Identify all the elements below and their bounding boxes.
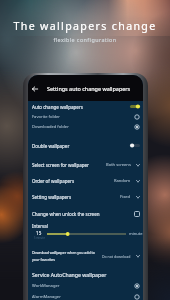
staticText: Favorite folder: [32, 114, 61, 120]
staticText: AlarmManager: [32, 294, 61, 300]
button[interactable]: Back: [29, 83, 41, 95]
staticText: 15: [36, 230, 42, 236]
staticText: The wallpapers change: [0, 19, 170, 33]
button[interactable]: Favorite folder: [28, 112, 143, 122]
staticText: Change when unlock the screen: [32, 211, 100, 217]
staticText: minute: [129, 231, 143, 236]
staticText: Auto change wallpapers: [32, 104, 83, 110]
button[interactable]: Downloaded folder: [28, 122, 143, 132]
staticText: Service AutoChange wallpaper: [32, 271, 107, 278]
button[interactable]: Select screen for wallpaper: [28, 158, 143, 172]
staticText: WorkManager: [32, 283, 60, 289]
staticText: Random: [114, 178, 131, 184]
staticText: Interval: [32, 223, 48, 229]
staticText: your favorites: [32, 257, 56, 262]
button[interactable]: Download wallpaper when you add to: [28, 248, 143, 264]
staticText: Double wallpaper: [32, 143, 70, 149]
button[interactable]: AlarmManager: [28, 292, 143, 300]
staticText: Select screen for wallpaper: [32, 162, 89, 168]
staticText: Do not download: [102, 254, 131, 259]
button[interactable]: Setting wallpapers: [28, 190, 143, 204]
staticText: Setting wallpapers: [32, 194, 72, 200]
staticText: Settings auto change wallpapers: [47, 85, 131, 92]
button[interactable]: WorkManager: [28, 281, 143, 291]
button[interactable]: Double wallpaper: [28, 140, 143, 151]
button[interactable]: Change when unlock the screen: [28, 208, 143, 220]
staticText: 5 minute: [34, 236, 45, 240]
staticText: Fixed: [120, 194, 131, 200]
staticText: flexible configuration: [0, 36, 170, 43]
staticText: Both screens: [106, 162, 131, 168]
staticText: Downloaded folder: [32, 124, 69, 130]
staticText: Order of wallpapers: [32, 178, 75, 184]
staticText: Download wallpaper when you add to: [32, 250, 96, 255]
button[interactable]: Order of wallpapers: [28, 174, 143, 188]
button[interactable]: Auto change wallpapers: [28, 101, 143, 112]
